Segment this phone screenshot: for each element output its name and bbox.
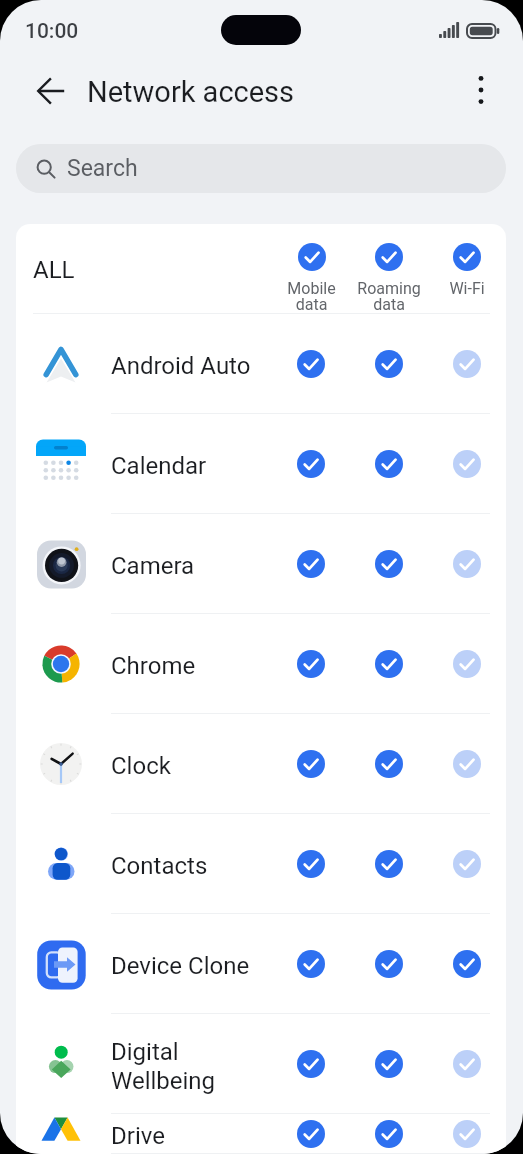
staticText: Calendar xyxy=(111,452,207,480)
button[interactable]: Contacts xyxy=(16,814,506,914)
button[interactable]: Camera xyxy=(16,514,506,614)
staticText: Android Auto xyxy=(111,352,251,380)
button[interactable]: Drive xyxy=(16,1114,506,1154)
button[interactable]: Digital Wellbeing xyxy=(16,1014,506,1114)
staticText: Roaming data xyxy=(357,279,421,314)
staticText: Wi-Fi xyxy=(449,279,485,298)
staticText: Contacts xyxy=(111,852,208,880)
button[interactable]: Clock xyxy=(16,714,506,814)
staticText: Drive xyxy=(111,1122,165,1150)
button[interactable]: Android Auto xyxy=(16,314,506,414)
button[interactable]: Device Clone xyxy=(16,914,506,1014)
staticText: Device Clone xyxy=(111,952,250,980)
button[interactable]: Calendar xyxy=(16,414,506,514)
button[interactable]: Chrome xyxy=(16,614,506,714)
button[interactable]: Back xyxy=(27,67,74,114)
staticText: Mobile data xyxy=(287,279,336,314)
staticText: Camera xyxy=(111,552,195,580)
staticText: Network access xyxy=(87,75,295,109)
staticText: Chrome xyxy=(111,652,196,680)
button[interactable]: Search xyxy=(16,144,506,193)
staticText: ALL xyxy=(33,256,75,284)
staticText: 10:00 xyxy=(25,19,79,44)
staticText: Clock xyxy=(111,752,171,780)
button[interactable]: More options xyxy=(459,68,503,112)
staticText: Search xyxy=(67,155,138,182)
staticText: Digital Wellbeing xyxy=(111,1038,216,1095)
